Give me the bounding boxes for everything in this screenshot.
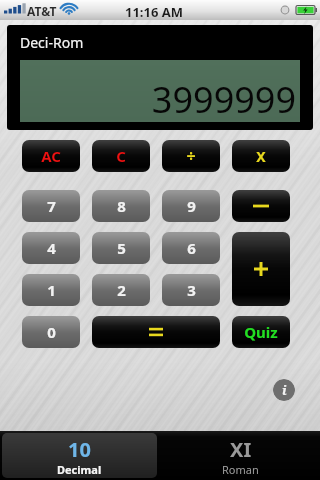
button[interactable]: AC bbox=[22, 140, 80, 172]
staticText: Decimal bbox=[57, 462, 102, 477]
staticText: 2 bbox=[117, 280, 126, 300]
button[interactable]: 5 bbox=[92, 232, 150, 264]
button[interactable]: 3 bbox=[162, 274, 220, 306]
staticText: 11:16 AM bbox=[125, 3, 184, 21]
button[interactable]: 8 bbox=[92, 190, 150, 222]
button[interactable]: XI bbox=[163, 433, 318, 478]
button[interactable]: Quiz bbox=[232, 316, 290, 348]
staticText: Quiz bbox=[244, 322, 278, 342]
staticText: AT&T bbox=[27, 3, 57, 19]
staticText: AC bbox=[41, 146, 61, 166]
button[interactable] bbox=[92, 316, 220, 348]
staticText: 0 bbox=[47, 322, 56, 342]
button[interactable]: 0 bbox=[22, 316, 80, 348]
staticText: ÷ bbox=[186, 145, 196, 167]
staticText: 4 bbox=[47, 238, 56, 258]
button[interactable]: 7 bbox=[22, 190, 80, 222]
staticText: 1 bbox=[47, 280, 56, 300]
button[interactable]: X bbox=[232, 140, 290, 172]
button[interactable]: C bbox=[92, 140, 150, 172]
button[interactable]: Info bbox=[273, 379, 295, 401]
staticText: XI bbox=[230, 436, 252, 463]
staticText: 10 bbox=[68, 436, 91, 463]
staticText: 5 bbox=[117, 238, 126, 258]
staticText: 3 bbox=[187, 280, 196, 300]
button[interactable]: 9 bbox=[162, 190, 220, 222]
button[interactable]: 10 bbox=[2, 433, 157, 478]
button[interactable]: 1 bbox=[22, 274, 80, 306]
staticText: 8 bbox=[117, 196, 126, 216]
staticText: C bbox=[116, 146, 126, 166]
staticText: X bbox=[256, 147, 266, 166]
staticText: i bbox=[282, 381, 287, 399]
staticText: 3999999 bbox=[151, 75, 296, 124]
button[interactable]: 2 bbox=[92, 274, 150, 306]
staticText: 7 bbox=[47, 196, 56, 216]
button[interactable]: 6 bbox=[162, 232, 220, 264]
staticText: Deci-Rom bbox=[20, 33, 84, 52]
staticText: 9 bbox=[187, 196, 196, 216]
button[interactable]: ÷ bbox=[162, 140, 220, 172]
staticText: Roman bbox=[222, 462, 259, 477]
button[interactable]: 4 bbox=[22, 232, 80, 264]
button[interactable] bbox=[232, 190, 290, 222]
button[interactable] bbox=[232, 232, 290, 306]
staticText: 6 bbox=[187, 238, 196, 258]
